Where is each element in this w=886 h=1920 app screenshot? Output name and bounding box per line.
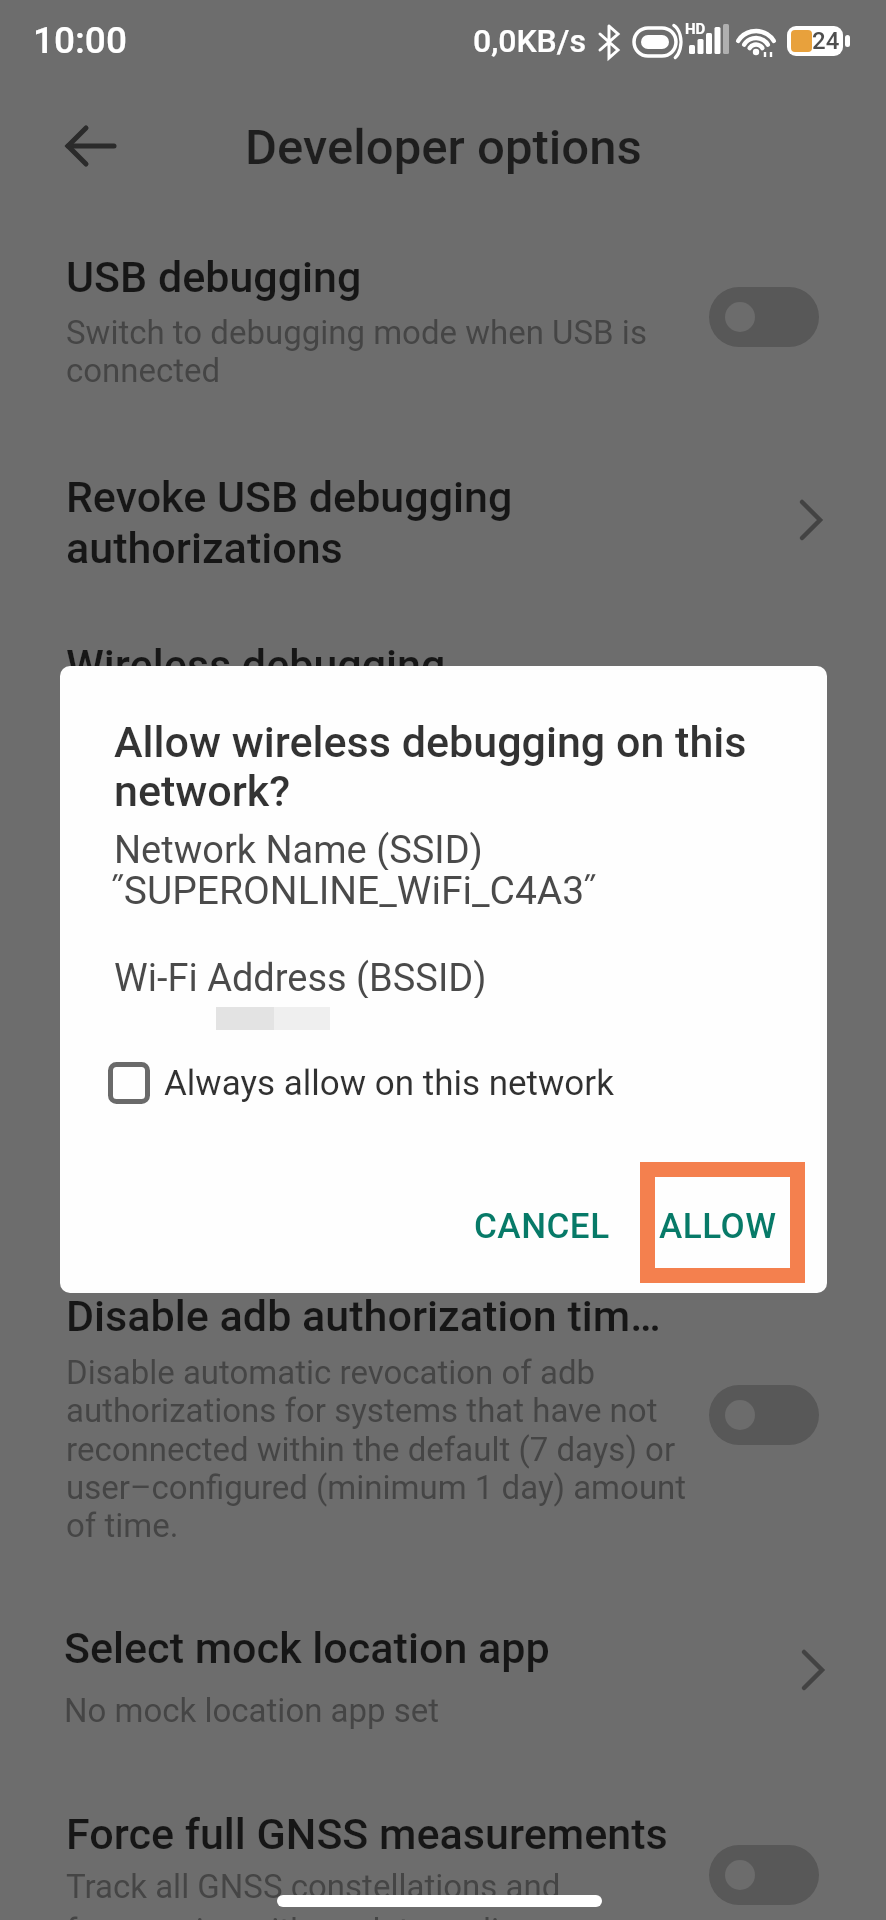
button[interactable]: Force full GNSS measurements: [66, 1809, 766, 1859]
staticText: authorizations: [66, 523, 343, 573]
staticText: Network Name (SSID): [114, 828, 483, 870]
button[interactable]: [709, 1385, 819, 1445]
button[interactable]: [62, 124, 120, 168]
staticText: Developer options: [245, 119, 642, 176]
staticText: frequencies with no duty cycling: [66, 1911, 536, 1920]
button[interactable]: ALLOW: [653, 1198, 783, 1254]
staticText: ALLOW: [659, 1206, 777, 1247]
staticText: No mock location app set: [64, 1691, 440, 1730]
staticText: Track all GNSS constellations and: [66, 1867, 561, 1906]
staticText: authorizations for systems that have not: [66, 1391, 658, 1430]
button[interactable]: Select mock location app: [64, 1623, 724, 1673]
staticText: Allow wireless debugging on this: [114, 717, 747, 767]
staticText: 0,0KB/s: [473, 22, 586, 60]
button[interactable]: [709, 287, 819, 347]
staticText: user–configured (minimum 1 day) amount: [66, 1468, 687, 1507]
staticText: CANCEL: [474, 1206, 610, 1247]
staticText: Select mock location app: [64, 1623, 550, 1673]
staticText: Revoke USB debugging: [66, 472, 513, 522]
staticText: USB debugging: [66, 252, 362, 302]
button[interactable]: USB debugging: [66, 252, 726, 302]
button[interactable]: [104, 1056, 664, 1114]
staticText: Disable adb authorization tim…: [66, 1291, 661, 1341]
staticText: Wi-Fi Address (BSSID): [114, 956, 487, 998]
staticText: Disable automatic revocation of adb: [66, 1353, 596, 1392]
staticText: network?: [114, 766, 291, 816]
staticText: Switch to debugging mode when USB is: [66, 313, 647, 352]
button[interactable]: Disable adb authorization tim…: [66, 1291, 766, 1341]
staticText: HD: [685, 20, 706, 38]
staticText: Force full GNSS measurements: [66, 1809, 668, 1859]
staticText: connected: [66, 351, 221, 390]
button[interactable]: [709, 1845, 819, 1905]
button[interactable]: Revoke USB debugging: [66, 472, 726, 522]
staticText: ʺSUPERONLINE_WiFi_C4A3ʺ: [112, 868, 596, 912]
staticText: reconnected within the default (7 days) …: [66, 1430, 676, 1469]
staticText: 24: [812, 27, 840, 55]
staticText: of time.: [66, 1506, 179, 1545]
staticText: Wireless debugging: [66, 640, 446, 690]
button[interactable]: CANCEL: [472, 1198, 612, 1254]
staticText: Always allow on this network: [164, 1063, 614, 1104]
staticText: 10:00: [33, 19, 127, 62]
